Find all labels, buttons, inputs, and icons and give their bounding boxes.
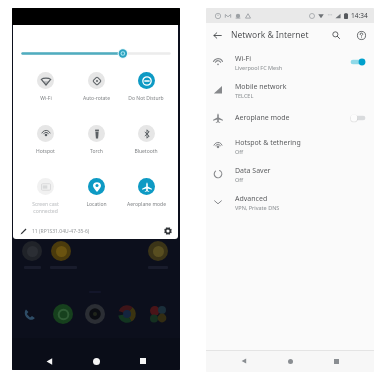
button[interactable]: Back [206, 23, 228, 47]
staticText: Wi-Fi [40, 95, 52, 102]
button[interactable]: Data Saver [206, 160, 374, 188]
staticText: Torch [90, 148, 103, 155]
button[interactable]: Auto-rotate [71, 72, 121, 118]
button[interactable]: Hotspot [20, 125, 71, 171]
button[interactable]: Edit tiles [16, 224, 30, 238]
button[interactable]: Help [350, 24, 372, 46]
button[interactable]: Torch [71, 125, 121, 171]
staticText: Hotspot [36, 148, 55, 155]
button[interactable]: Recents [134, 352, 152, 370]
staticText: 14:34 [351, 11, 368, 20]
button[interactable]: Hotspot & tethering [206, 132, 374, 160]
button[interactable] [148, 241, 168, 261]
button[interactable]: Wi-Fi [20, 72, 71, 118]
button[interactable]: Location [71, 178, 121, 224]
button[interactable]: Back [236, 353, 252, 369]
staticText: Auto-rotate [83, 95, 110, 102]
button[interactable]: Chrome [117, 304, 137, 324]
staticText: Screen cast connected [32, 201, 59, 215]
staticText: 11 (RP1S31.04U-47-35-6) [32, 228, 90, 235]
button[interactable]: Search [325, 24, 347, 46]
button[interactable]: Home [282, 353, 298, 369]
button[interactable]: Wi-Fi [206, 48, 374, 76]
button[interactable] [51, 241, 71, 261]
button[interactable]: Home [87, 352, 105, 370]
button[interactable]: Screen cast connected [20, 178, 71, 224]
button[interactable]: Do Not Disturb [121, 72, 171, 118]
staticText: VPN, Private DNS [235, 204, 280, 211]
staticText: Off [235, 148, 244, 155]
staticText: Mobile network [235, 82, 287, 92]
staticText: Network & Internet [231, 29, 309, 41]
staticText: TELCEL [235, 92, 254, 99]
button[interactable]: Aeroplane mode [121, 178, 171, 224]
button[interactable]: Apps [148, 304, 168, 324]
staticText: Bluetooth [134, 148, 158, 155]
button[interactable]: Advanced [206, 188, 374, 216]
button[interactable] [22, 241, 42, 261]
button[interactable]: WhatsApp [53, 304, 73, 324]
button[interactable]: Camera [85, 304, 105, 324]
staticText: Aeroplane mode [235, 113, 290, 123]
staticText: Liverpool FC Mesh [235, 64, 283, 71]
button[interactable]: Mobile network [206, 76, 374, 104]
button[interactable]: Back [40, 352, 58, 370]
staticText: Hotspot & tethering [235, 138, 301, 148]
staticText: Advanced [235, 194, 268, 204]
button[interactable]: Recents [328, 353, 344, 369]
staticText: Aeroplane mode [127, 201, 166, 208]
button[interactable]: Settings [161, 224, 175, 238]
staticText: Off [235, 176, 244, 183]
button[interactable]: Aeroplane mode [206, 104, 374, 132]
staticText: Do Not Disturb [128, 95, 164, 102]
button[interactable]: Bluetooth [121, 125, 171, 171]
staticText: Wi-Fi [235, 54, 252, 64]
button[interactable]: Phone [20, 304, 40, 324]
staticText: Data Saver [235, 166, 271, 176]
staticText: Location [86, 201, 107, 208]
